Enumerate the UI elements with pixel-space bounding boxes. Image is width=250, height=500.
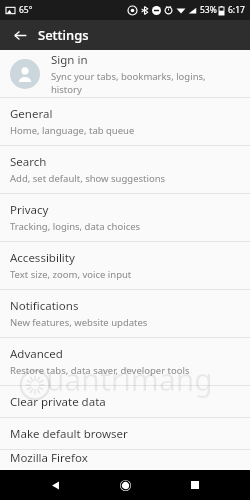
- button[interactable]: Back: [40, 470, 70, 500]
- staticText: 65°: [19, 4, 33, 16]
- button[interactable]: Notifications: [0, 290, 250, 337]
- staticText: uantrimang: [46, 359, 213, 400]
- button[interactable]: Clear private data: [0, 386, 250, 417]
- staticText: Text size, zoom, voice input: [10, 268, 132, 281]
- button[interactable]: Back: [8, 23, 32, 47]
- button[interactable]: General: [0, 98, 250, 145]
- button[interactable]: Accessibility: [0, 242, 250, 289]
- staticText: Tracking, logins, data choices: [10, 220, 141, 233]
- staticText: General: [10, 106, 53, 122]
- staticText: Clear private data: [10, 394, 106, 410]
- staticText: Restore tabs, data saver, developer tool…: [10, 364, 190, 377]
- staticText: Sign in: [51, 52, 88, 68]
- button[interactable]: Mozilla Firefox: [0, 450, 250, 470]
- staticText: Notifications: [10, 298, 79, 314]
- staticText: New features, website updates: [10, 316, 148, 329]
- staticText: Add, set default, show suggestions: [10, 172, 166, 185]
- button[interactable]: Sign in: [0, 50, 250, 97]
- staticText: Advanced: [10, 346, 63, 362]
- button[interactable]: Make default browser: [0, 418, 250, 449]
- staticText: 53%: [200, 4, 217, 16]
- staticText: Privacy: [10, 202, 49, 218]
- staticText: Mozilla Firefox: [10, 450, 88, 466]
- button[interactable]: Advanced: [0, 338, 250, 385]
- button[interactable]: Recent apps: [180, 470, 210, 500]
- button[interactable]: Privacy: [0, 194, 250, 241]
- staticText: Make default browser: [10, 426, 128, 442]
- staticText: Home, language, tab queue: [10, 124, 135, 137]
- staticText: 6:17: [228, 4, 245, 16]
- button[interactable]: Search: [0, 146, 250, 193]
- staticText: Sync your tabs, bookmarks, logins, histo…: [51, 70, 238, 96]
- staticText: Accessibility: [10, 250, 75, 266]
- button[interactable]: Home: [110, 470, 140, 500]
- staticText: Settings: [38, 26, 89, 44]
- staticText: Search: [10, 154, 47, 170]
